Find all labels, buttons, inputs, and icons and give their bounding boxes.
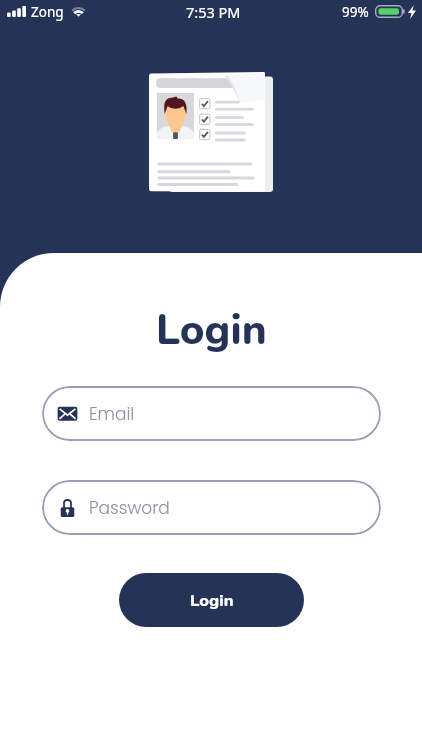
staticText: Email: [89, 402, 135, 426]
staticText: 7:53 PM: [186, 2, 241, 22]
button[interactable]: Email: [42, 386, 381, 441]
staticText: Zong: [31, 3, 64, 21]
button[interactable]: Password: [42, 480, 381, 535]
staticText: Login: [190, 589, 234, 612]
staticText: Login: [156, 302, 267, 359]
staticText: 99%: [342, 3, 369, 21]
button[interactable]: Login: [119, 573, 304, 627]
staticText: Password: [89, 496, 170, 520]
